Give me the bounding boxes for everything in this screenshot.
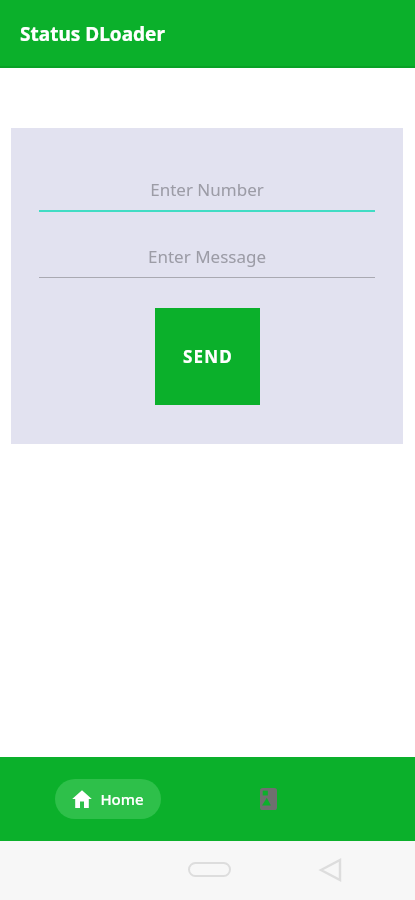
- staticText: Enter Message: [148, 245, 266, 268]
- staticText: Status DLoader: [20, 21, 165, 47]
- button[interactable]: Enter Message: [39, 239, 375, 278]
- button[interactable]: Status: [245, 776, 291, 822]
- button[interactable]: Home: [55, 779, 161, 819]
- button[interactable]: SEND: [155, 308, 260, 405]
- staticText: Enter Number: [150, 178, 264, 201]
- staticText: SEND: [183, 345, 233, 368]
- staticText: Home: [100, 789, 144, 809]
- button[interactable]: Enter Number: [39, 172, 375, 212]
